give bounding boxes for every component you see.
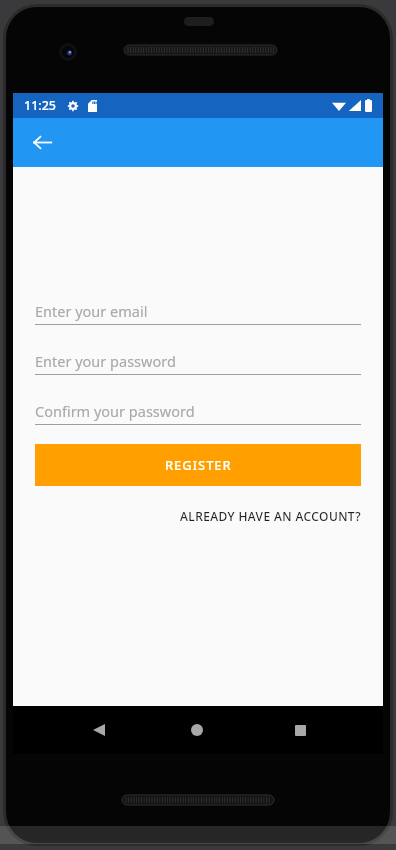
- button[interactable]: ALREADY HAVE AN ACCOUNT?: [35, 508, 361, 524]
- staticText: Confirm your password: [35, 401, 195, 421]
- button[interactable]: Home: [183, 716, 211, 744]
- staticText: Enter your email: [35, 301, 148, 321]
- staticText: Enter your password: [35, 351, 176, 371]
- button[interactable]: Confirm your password: [35, 398, 361, 425]
- staticText: 11:25: [24, 97, 57, 114]
- button[interactable]: Back: [85, 716, 113, 744]
- button[interactable]: Recent apps: [286, 716, 314, 744]
- button[interactable]: Back: [30, 130, 55, 155]
- button[interactable]: Enter your email: [35, 298, 361, 325]
- staticText: REGISTER: [165, 456, 232, 474]
- button[interactable]: Enter your password: [35, 348, 361, 375]
- button[interactable]: REGISTER: [35, 444, 361, 486]
- staticText: ALREADY HAVE AN ACCOUNT?: [180, 508, 361, 524]
